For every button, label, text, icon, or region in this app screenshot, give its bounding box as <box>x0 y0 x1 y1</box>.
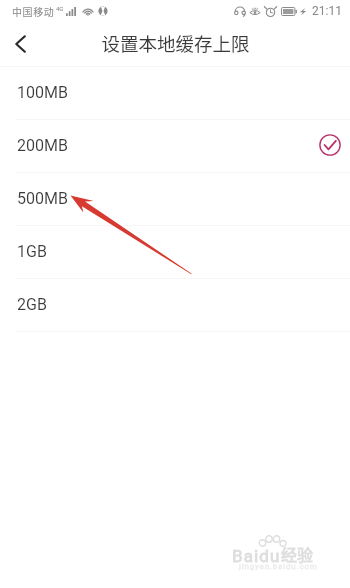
staticText: 设置本地缓存上限 <box>101 30 250 57</box>
staticText: 中国移动 <box>12 4 55 18</box>
staticText: 200MB <box>17 136 68 155</box>
button[interactable]: 500MB <box>0 173 350 225</box>
staticText: 4G <box>56 5 64 12</box>
staticText: 21:11 <box>312 4 342 18</box>
button[interactable]: 2GB <box>0 279 350 331</box>
staticText: 1GB <box>17 242 47 261</box>
staticText: 100MB <box>17 83 68 102</box>
button[interactable]: 100MB <box>0 67 350 119</box>
staticText: jingyan.baidu.com <box>239 562 318 571</box>
button[interactable]: 200MB <box>0 120 350 172</box>
staticText: 2GB <box>17 295 47 314</box>
button[interactable]: 1GB <box>0 226 350 278</box>
staticText: 经验 <box>281 542 314 565</box>
staticText: 500MB <box>17 189 68 208</box>
button[interactable]: Back <box>0 22 44 66</box>
staticText: Baidu <box>232 546 281 566</box>
